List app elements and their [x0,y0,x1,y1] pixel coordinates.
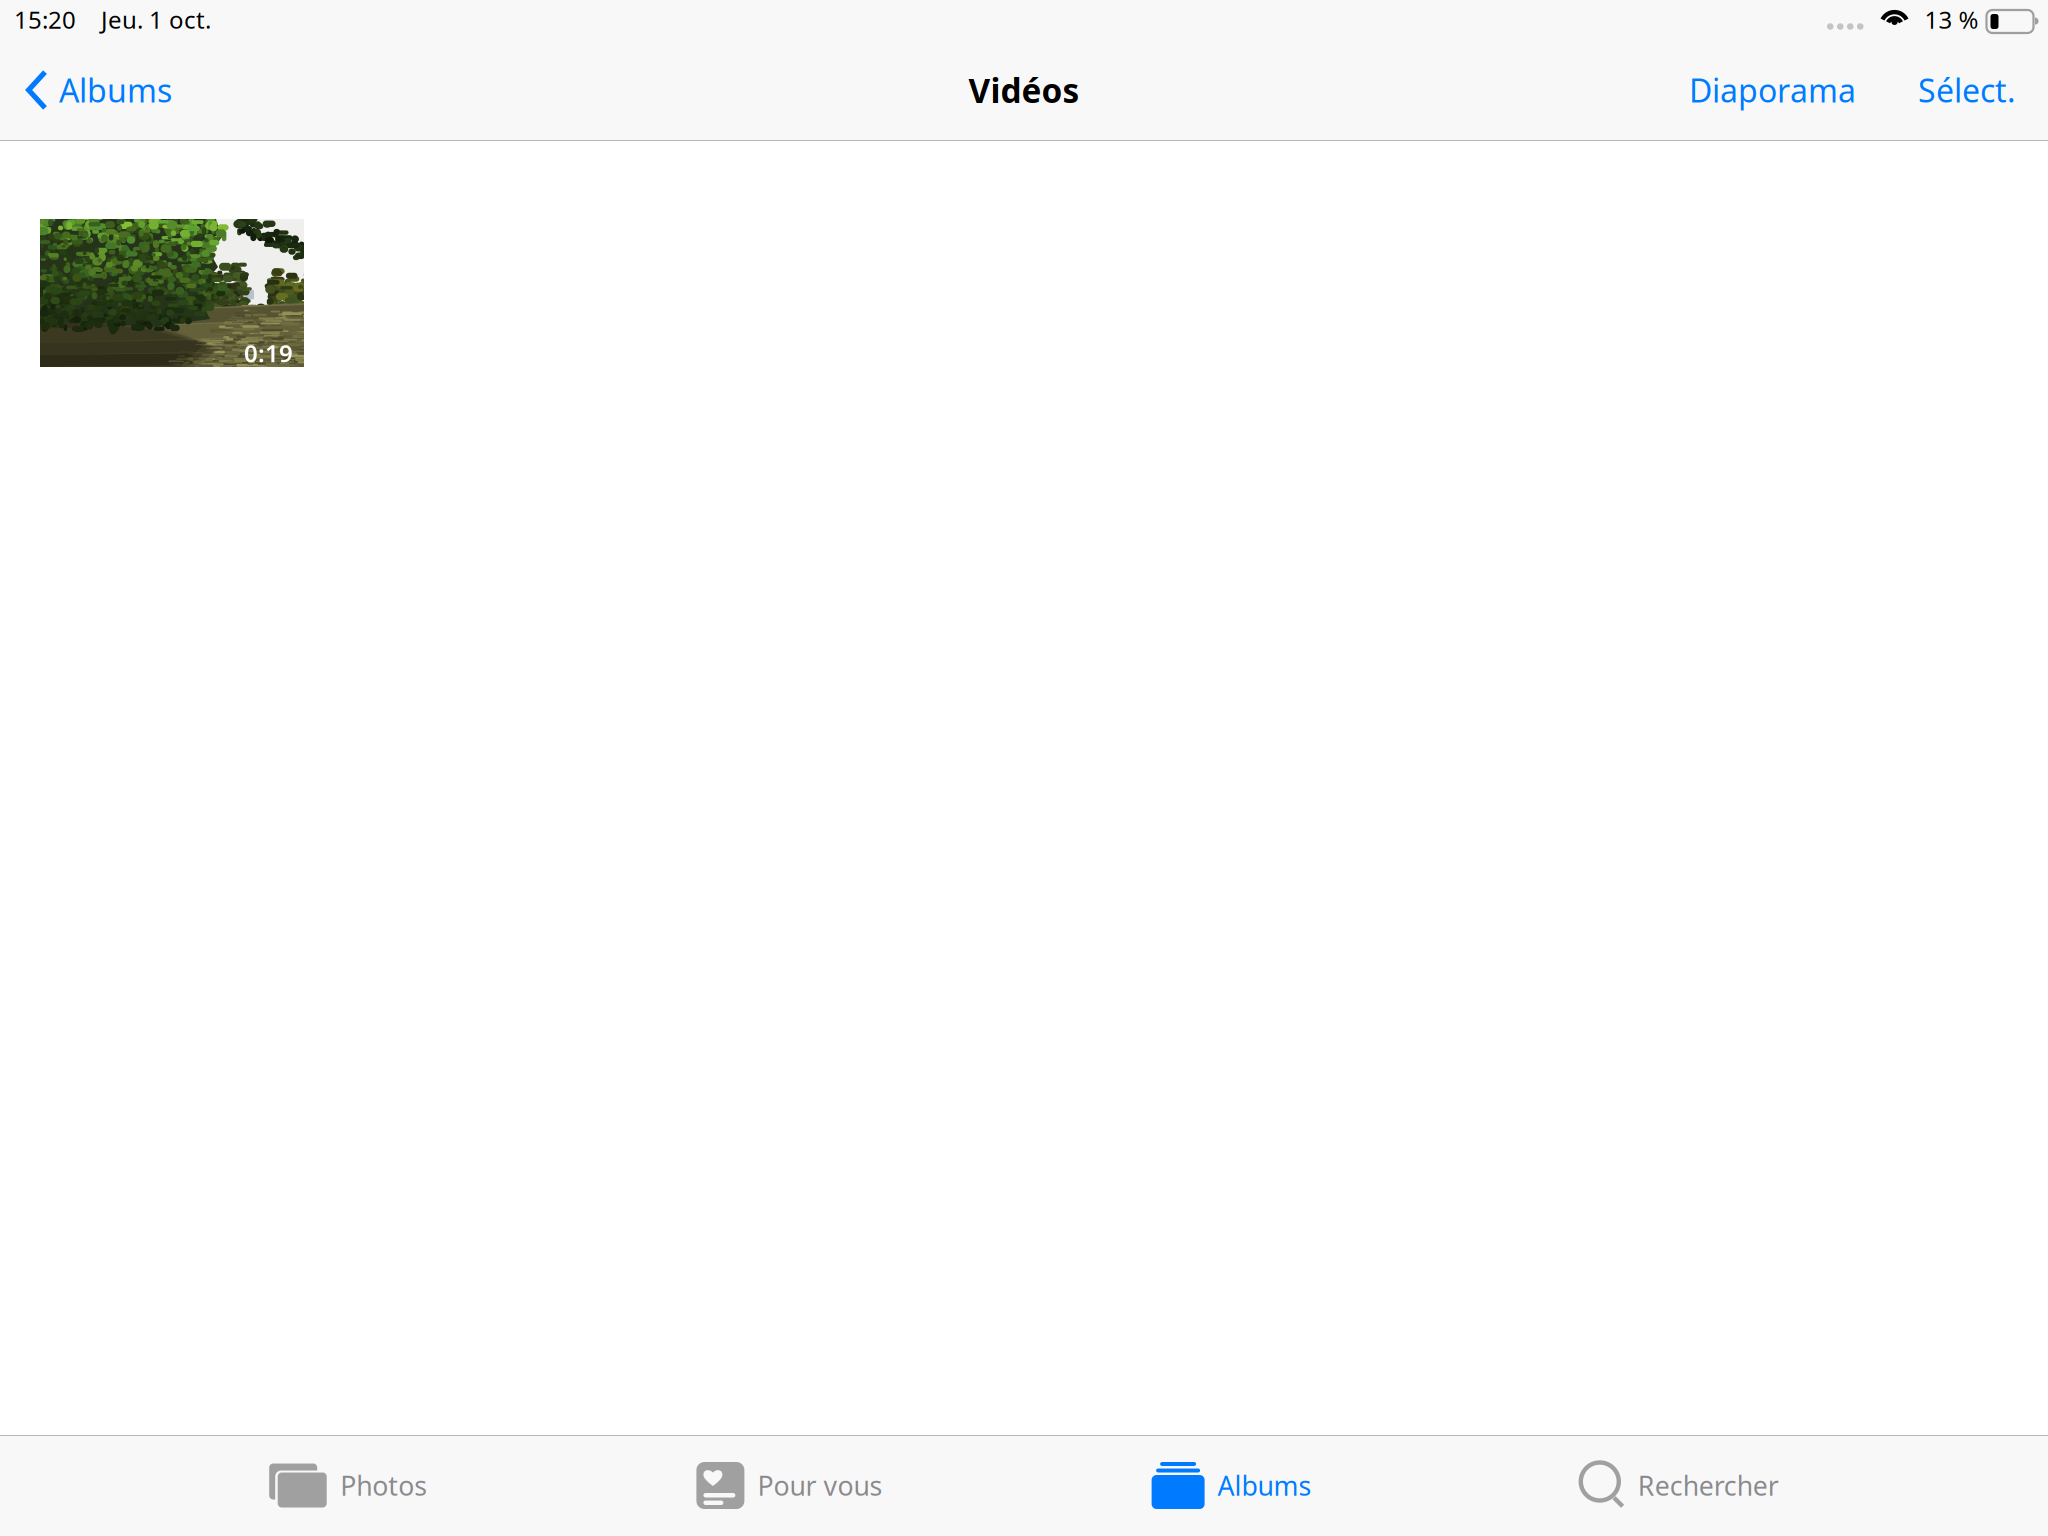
button[interactable]: Pour vous [696,1435,882,1536]
button[interactable]: Albums [1152,1435,1312,1536]
button[interactable]: Sélect. [1910,59,2024,121]
staticText: Albums [59,69,172,111]
staticText: Albums [1218,1468,1312,1503]
staticText: Diaporama [1689,69,1856,111]
staticText: Sélect. [1918,69,2016,111]
button[interactable]: Rechercher [1581,1435,1779,1536]
staticText: 0:19 [244,337,293,369]
staticText: 13 % [1924,4,1978,35]
staticText: 15:20 [14,4,76,35]
staticText: Photos [340,1468,427,1503]
button[interactable]: Vidéo, 0:19 [40,219,304,367]
staticText: Vidéos [968,68,1079,112]
button[interactable]: Albums [18,59,180,121]
button[interactable]: Diaporama [1681,59,1864,121]
button[interactable]: Photos [269,1435,427,1536]
staticText: Pour vous [757,1468,882,1503]
staticText: Rechercher [1638,1468,1779,1503]
staticText: Jeu. 1 oct. [101,4,211,35]
